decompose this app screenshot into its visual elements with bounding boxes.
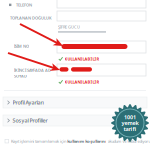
staticText: Profil Ayarları <box>12 99 43 106</box>
staticText: TELEFON <box>16 2 32 7</box>
button[interactable]: Sosyal Profiller <box>3 115 147 126</box>
staticText: ŞİFRE GÜCÜ <box>58 24 80 30</box>
staticText: kullanım koşullarını <box>67 138 106 144</box>
staticText: yemek <box>121 119 138 127</box>
staticText: SOYAD <box>14 73 27 79</box>
staticText: Sosyal Profiller <box>12 117 47 124</box>
staticText: İSİM NO <box>14 43 29 49</box>
staticText: Kayıt işlemini tamamlamak için <box>11 138 66 144</box>
button[interactable]: Profil Ayarları <box>3 97 147 108</box>
staticText: tarifi <box>123 125 136 132</box>
button[interactable]: Kullanım koşullarını kabul ediyorum <box>5 139 9 143</box>
staticText: TOPLANAN DOĞULUK <box>10 15 52 20</box>
staticText: 1001 <box>124 114 136 121</box>
staticText: okudum ve kabul ediyorum. <box>107 138 150 144</box>
staticText: İKİNCİ SAYFADA AD <box>14 67 51 73</box>
staticText: KULLANILABİLİR <box>64 79 99 85</box>
staticText: KULLANILABİLİR <box>64 56 99 62</box>
